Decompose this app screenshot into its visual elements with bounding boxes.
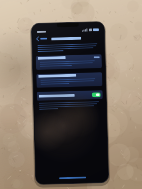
button[interactable]: Back to Battery bbox=[35, 36, 48, 42]
button[interactable] bbox=[36, 54, 102, 70]
other: Optimized Battery Charging on bbox=[92, 92, 101, 97]
button[interactable] bbox=[36, 72, 103, 88]
button[interactable]: Optimized Battery Charging on bbox=[37, 90, 103, 101]
